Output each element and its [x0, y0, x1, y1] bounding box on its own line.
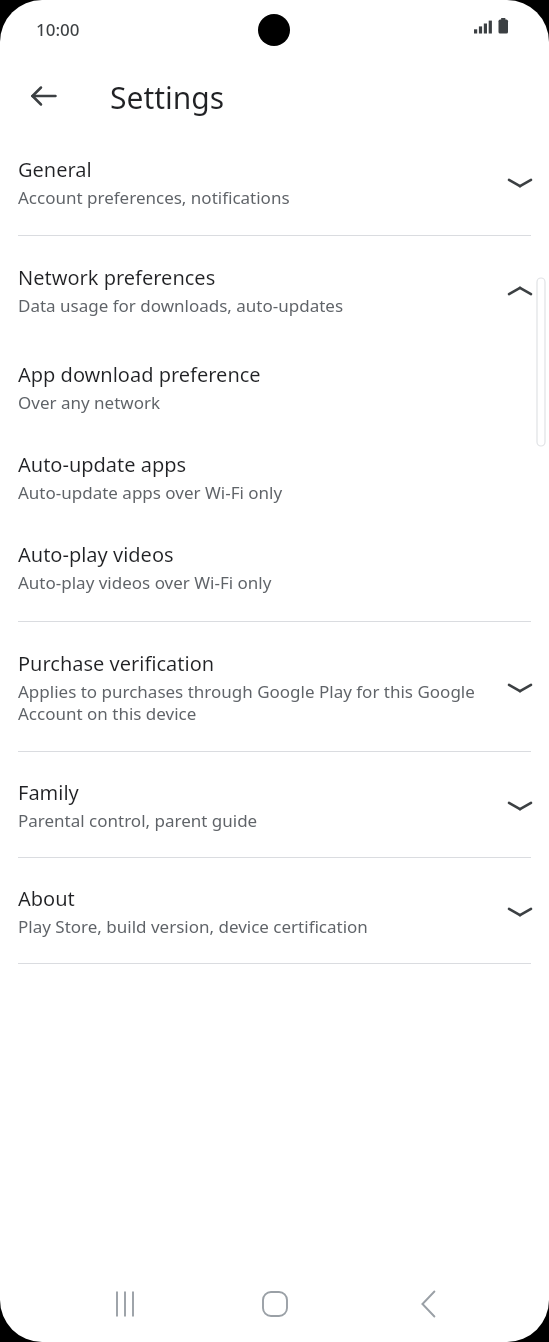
button[interactable]: Back — [20, 72, 68, 120]
staticText: Settings — [110, 77, 225, 118]
staticText: Over any network — [18, 391, 161, 414]
staticText: Applies to purchases through Google Play… — [18, 680, 497, 725]
staticText: Auto-update apps — [18, 451, 187, 478]
staticText: App download preference — [18, 361, 261, 388]
staticText: Auto-update apps over Wi-Fi only — [18, 481, 283, 504]
staticText: Play Store, build version, device certif… — [18, 915, 368, 938]
staticText: 10:00 — [36, 18, 80, 41]
button[interactable]: Purchase verification — [0, 622, 549, 751]
staticText: Account preferences, notifications — [18, 186, 290, 209]
button[interactable]: App download preference — [0, 325, 549, 414]
button[interactable]: Recent apps — [93, 1272, 157, 1336]
button[interactable]: General — [0, 132, 549, 235]
button[interactable]: Auto-play videos — [0, 504, 549, 594]
staticText: General — [18, 156, 92, 183]
button[interactable]: About — [0, 858, 549, 963]
staticText: Family — [18, 779, 79, 806]
staticText: Auto-play videos over Wi-Fi only — [18, 571, 272, 594]
staticText: Data usage for downloads, auto-updates — [18, 294, 344, 317]
staticText: Purchase verification — [18, 650, 215, 677]
button[interactable]: Network preferences — [0, 236, 549, 325]
staticText: Auto-play videos — [18, 541, 174, 568]
button[interactable]: Home — [243, 1272, 307, 1336]
button[interactable]: Auto-update apps — [0, 414, 549, 504]
staticText: Network preferences — [18, 264, 216, 291]
staticText: Parental control, parent guide — [18, 809, 258, 832]
button[interactable]: Family — [0, 752, 549, 857]
staticText: About — [18, 885, 75, 912]
button[interactable]: Back — [397, 1272, 461, 1336]
